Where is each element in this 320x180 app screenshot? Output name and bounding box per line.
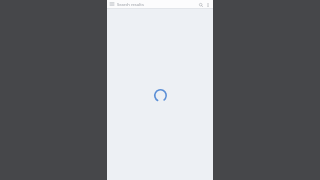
other: Loading bbox=[152, 87, 168, 103]
button[interactable]: More options bbox=[204, 1, 211, 8]
button[interactable]: Navigate up bbox=[109, 1, 115, 7]
staticText: Search results bbox=[117, 2, 197, 7]
button[interactable]: Search bbox=[197, 1, 204, 8]
